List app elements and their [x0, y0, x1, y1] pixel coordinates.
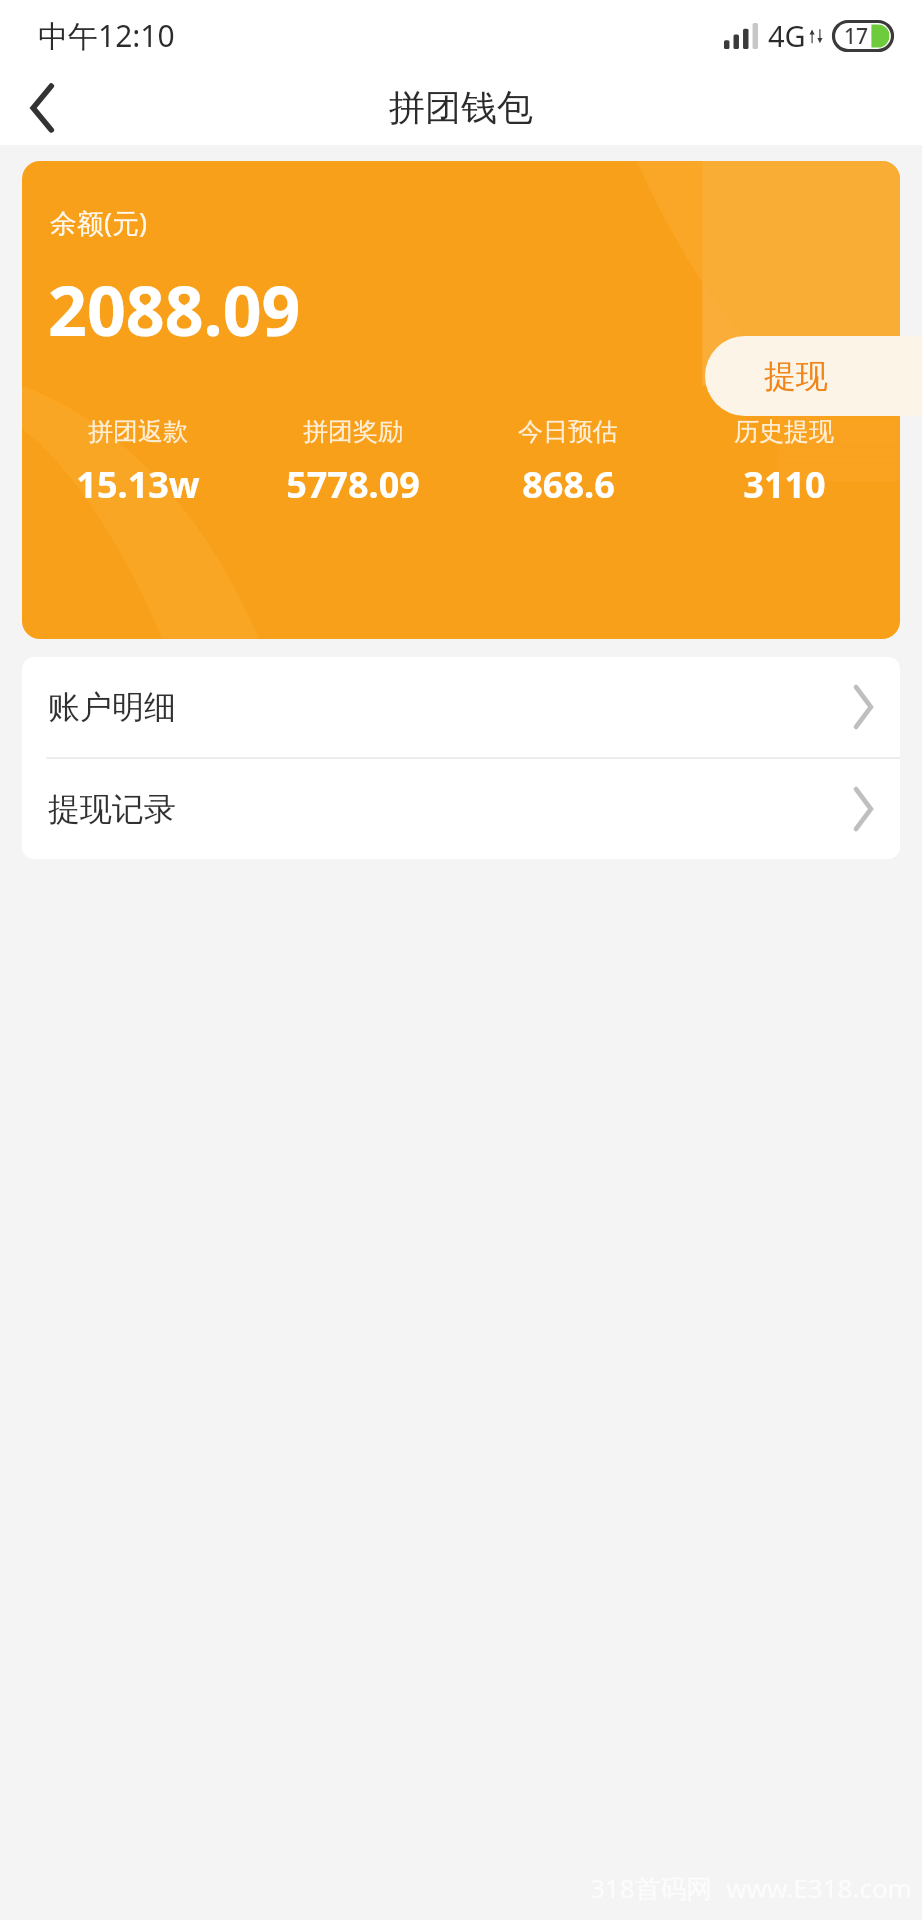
button[interactable]: 账户明细 [22, 657, 900, 757]
staticText: 中午12:10 [38, 15, 175, 56]
staticText: 4G [768, 16, 806, 55]
staticText: 拼团返款 [88, 416, 188, 447]
staticText: 提现 [764, 356, 828, 396]
staticText: 868.6 [522, 460, 615, 509]
staticText: 余额(元) [50, 204, 148, 241]
staticText: 历史提现 [734, 416, 834, 447]
staticText: 17 [844, 22, 869, 51]
button[interactable]: 提现记录 [22, 759, 900, 859]
staticText: 3110 [743, 460, 826, 509]
staticText: 15.13w [76, 460, 200, 509]
staticText: 拼团钱包 [389, 85, 533, 130]
staticText: 账户明细 [48, 687, 176, 727]
staticText: 提现记录 [48, 789, 176, 829]
staticText: 5778.09 [286, 460, 420, 509]
button[interactable]: 提现 [705, 336, 922, 416]
staticText: 2088.09 [48, 263, 301, 356]
staticText: 今日预估 [518, 416, 618, 447]
button[interactable]: Back [0, 70, 86, 145]
staticText: 拼团奖励 [303, 416, 403, 447]
